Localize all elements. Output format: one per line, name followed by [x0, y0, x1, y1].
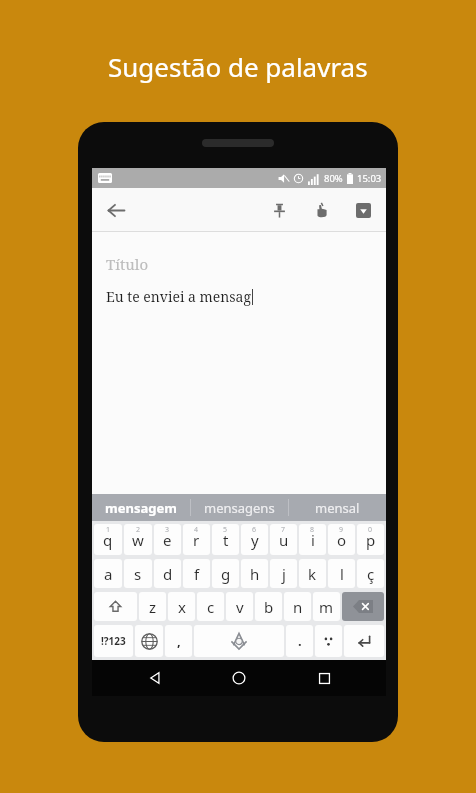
staticText: 9: [339, 525, 344, 535]
staticText: !?123: [101, 634, 126, 648]
button[interactable]: v: [226, 592, 253, 621]
staticText: z: [149, 597, 157, 617]
staticText: u: [279, 530, 289, 550]
staticText: ç: [367, 564, 375, 584]
button[interactable]: g: [212, 559, 239, 588]
staticText: 5: [223, 525, 228, 535]
button[interactable]: Recents: [302, 660, 346, 696]
staticText: c: [207, 597, 215, 617]
button[interactable]: c: [197, 592, 224, 621]
button[interactable]: w: [124, 524, 152, 555]
staticText: f: [194, 564, 200, 584]
staticText: 4: [194, 525, 199, 535]
staticText: 6: [252, 525, 257, 535]
button[interactable]: i: [299, 524, 326, 555]
staticText: Sugestão de palavras: [108, 49, 368, 84]
button[interactable]: Handwriting: [308, 197, 334, 223]
button[interactable]: s: [124, 559, 152, 588]
button[interactable]: m: [313, 592, 340, 621]
button[interactable]: b: [255, 592, 282, 621]
staticText: y: [251, 530, 259, 550]
button[interactable]: Key: [342, 592, 384, 621]
button[interactable]: mensagem: [92, 494, 190, 521]
button[interactable]: Key: [194, 625, 284, 657]
button[interactable]: q: [94, 524, 122, 555]
staticText: j: [282, 564, 286, 584]
button[interactable]: Pin: [266, 197, 292, 223]
button[interactable]: y: [241, 524, 268, 555]
button[interactable]: Key: [135, 625, 163, 657]
staticText: 1: [106, 525, 111, 535]
button[interactable]: n: [284, 592, 311, 621]
button[interactable]: l: [328, 559, 355, 588]
button[interactable]: Key: [94, 592, 137, 621]
button[interactable]: d: [154, 559, 181, 588]
staticText: h: [250, 564, 260, 584]
button[interactable]: Key: [315, 625, 342, 657]
staticText: g: [221, 564, 231, 584]
staticText: mensagem: [105, 499, 177, 517]
button[interactable]: u: [270, 524, 297, 555]
staticText: e: [163, 530, 172, 550]
staticText: b: [264, 597, 274, 617]
staticText: 15:03: [357, 172, 382, 185]
staticText: x: [178, 597, 186, 617]
staticText: w: [132, 530, 144, 550]
staticText: Eu te enviei a mensag: [106, 287, 252, 306]
button[interactable]: mensagens: [191, 494, 288, 521]
button[interactable]: f: [183, 559, 210, 588]
staticText: k: [308, 564, 317, 584]
button[interactable]: p: [357, 524, 384, 555]
button[interactable]: Back: [133, 660, 177, 696]
staticText: v: [236, 597, 244, 617]
staticText: s: [134, 564, 142, 584]
button[interactable]: k: [299, 559, 326, 588]
button[interactable]: ç: [357, 559, 384, 588]
button[interactable]: a: [94, 559, 122, 588]
staticText: Título: [106, 254, 149, 274]
button[interactable]: .: [286, 625, 313, 657]
staticText: 2: [136, 525, 141, 535]
staticText: p: [366, 530, 376, 550]
staticText: 0: [368, 525, 373, 535]
staticText: t: [223, 530, 229, 550]
button[interactable]: Archive: [350, 197, 376, 223]
button[interactable]: Back: [100, 194, 132, 226]
staticText: ,: [177, 632, 181, 650]
button[interactable]: x: [168, 592, 195, 621]
staticText: mensagens: [204, 499, 275, 517]
button[interactable]: h: [241, 559, 268, 588]
staticText: a: [104, 564, 113, 584]
staticText: mensal: [315, 499, 360, 517]
staticText: d: [163, 564, 173, 584]
button[interactable]: j: [270, 559, 297, 588]
staticText: q: [103, 530, 113, 550]
button[interactable]: mensal: [289, 494, 386, 521]
button[interactable]: Home: [217, 660, 261, 696]
button[interactable]: Key: [344, 625, 384, 657]
button[interactable]: z: [139, 592, 166, 621]
staticText: i: [311, 530, 315, 550]
staticText: 7: [281, 525, 286, 535]
button[interactable]: o: [328, 524, 355, 555]
staticText: r: [193, 530, 200, 550]
button[interactable]: t: [212, 524, 239, 555]
staticText: 8: [310, 525, 315, 535]
button[interactable]: r: [183, 524, 210, 555]
staticText: 80%: [324, 172, 343, 185]
staticText: n: [293, 597, 303, 617]
staticText: m: [319, 597, 334, 617]
staticText: o: [337, 530, 347, 550]
staticText: .: [298, 632, 302, 650]
staticText: l: [340, 564, 344, 584]
button[interactable]: ,: [165, 625, 192, 657]
button[interactable]: e: [154, 524, 181, 555]
staticText: 3: [165, 525, 170, 535]
button[interactable]: !?123: [94, 625, 133, 657]
